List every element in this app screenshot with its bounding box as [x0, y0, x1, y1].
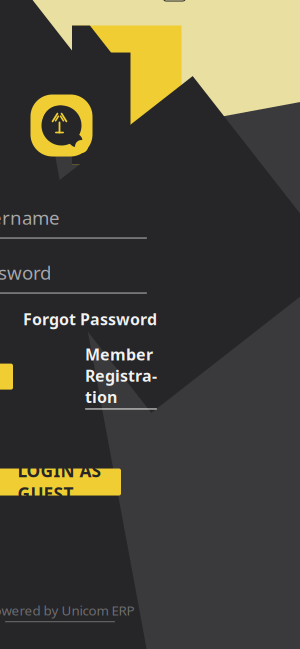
button[interactable]: Forgot Password — [23, 305, 157, 333]
button[interactable]: LOGIN — [0, 364, 13, 390]
staticText: Member Registration — [85, 344, 157, 407]
button[interactable]: LOGIN AS GUEST — [0, 468, 121, 495]
staticText: Username — [0, 205, 60, 230]
staticText: LOGIN AS GUEST — [17, 459, 101, 505]
button[interactable]: Member Registration — [85, 344, 157, 409]
staticText: Powered by Unicom ERP — [0, 601, 134, 619]
staticText: Password — [0, 260, 51, 285]
staticText: Forgot Password — [23, 308, 157, 330]
